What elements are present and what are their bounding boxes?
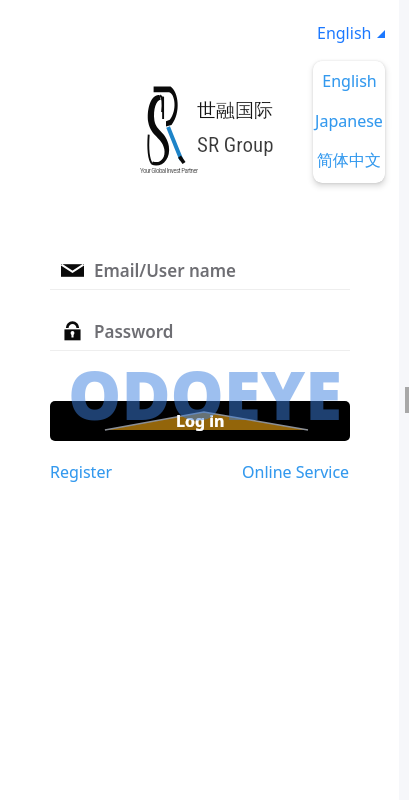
button[interactable]: 简体中文 bbox=[313, 141, 385, 181]
staticText: 简体中文 bbox=[317, 151, 381, 171]
staticText: Password bbox=[94, 320, 174, 343]
staticText: 世融国际 bbox=[197, 99, 273, 123]
button[interactable]: Select language bbox=[313, 18, 389, 48]
staticText: English bbox=[317, 22, 372, 44]
staticText: English bbox=[322, 70, 377, 92]
staticText: Your Global Invest Partner bbox=[140, 167, 198, 175]
staticText: Japanese bbox=[315, 110, 383, 132]
button[interactable]: Register bbox=[50, 461, 113, 483]
staticText: SR Group bbox=[197, 133, 274, 158]
staticText: Register bbox=[50, 461, 113, 483]
button[interactable]: Online Service bbox=[242, 461, 350, 483]
button[interactable]: Log in bbox=[50, 401, 350, 441]
staticText: Log in bbox=[176, 410, 225, 432]
button[interactable]: English bbox=[313, 61, 385, 101]
button[interactable]: Email/User name bbox=[50, 251, 350, 289]
staticText: ODOEYE bbox=[68, 348, 343, 439]
button[interactable]: Password bbox=[50, 312, 350, 350]
staticText: Email/User name bbox=[94, 259, 237, 282]
button[interactable]: Japanese bbox=[313, 101, 385, 141]
staticText: Online Service bbox=[242, 461, 350, 483]
